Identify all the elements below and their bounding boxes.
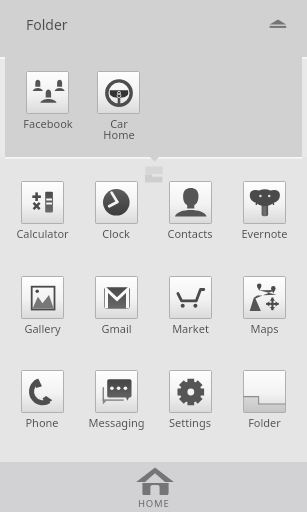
staticText: Car Home xyxy=(103,116,135,142)
staticText: Clock xyxy=(102,226,130,241)
button[interactable]: Gallery xyxy=(5,276,79,336)
staticText: Market xyxy=(172,321,209,336)
staticText: Gmail xyxy=(101,321,132,336)
button[interactable]: Phone xyxy=(5,370,79,430)
staticText: Folder xyxy=(248,415,281,430)
staticText: Phone xyxy=(25,415,59,430)
button[interactable]: Contacts xyxy=(153,181,227,241)
staticText: Evernote xyxy=(241,226,288,241)
button[interactable]: Clock xyxy=(79,181,153,241)
button[interactable]: Settings xyxy=(153,370,227,430)
button[interactable]: Messaging xyxy=(79,370,153,430)
staticText: Contacts xyxy=(167,226,213,241)
button[interactable]: Collapse folder xyxy=(262,10,294,36)
staticText: Maps xyxy=(250,321,279,336)
staticText: Facebook xyxy=(23,116,73,131)
staticText: Messaging xyxy=(88,415,145,430)
button[interactable]: Maps xyxy=(227,276,301,336)
staticText: Folder xyxy=(26,15,68,34)
button[interactable]: Market xyxy=(153,276,227,336)
button[interactable]: Gmail xyxy=(79,276,153,336)
staticText: Calculator xyxy=(16,226,69,241)
staticText: Gallery xyxy=(24,321,61,336)
button[interactable]: Facebook xyxy=(12,71,83,131)
staticText: Settings xyxy=(169,415,211,430)
button[interactable]: Car Home xyxy=(83,71,154,142)
button[interactable]: Home xyxy=(122,464,186,510)
button[interactable]: Folder xyxy=(227,370,301,430)
button[interactable]: Calculator xyxy=(5,181,79,241)
button[interactable]: Evernote xyxy=(227,181,301,241)
staticText: HOME xyxy=(138,497,170,510)
